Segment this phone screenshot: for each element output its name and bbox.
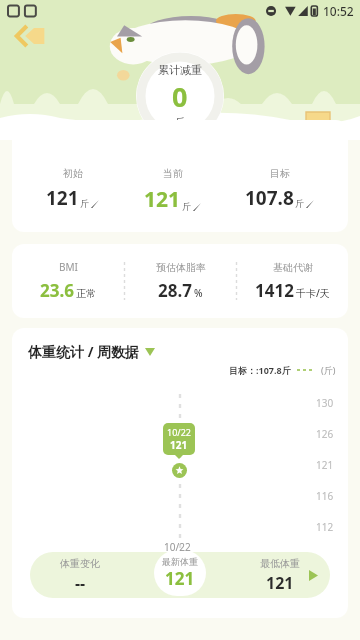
staticText: 23.6 [40,279,74,302]
button[interactable]: 基础代谢 [237,261,348,302]
staticText: 10/22 [167,426,191,438]
staticText: 130 [316,396,334,410]
staticText: 基础代谢 [273,261,313,274]
button[interactable]: Back [10,22,50,50]
staticText: 107.8 [245,185,294,211]
staticText: 体重变化 [60,557,100,570]
staticText: 初始 [63,167,83,180]
staticText: 116 [316,489,334,503]
staticText: 目标：:107.8斤 [229,364,291,376]
staticText: 121 [170,438,188,452]
staticText: 121 [165,567,195,590]
staticText: 126 [316,427,334,441]
staticText: 最新体重 [162,556,198,567]
button[interactable]: 当前 [134,165,211,216]
staticText: 斤 [80,198,89,209]
staticText: 10:52 [323,3,354,19]
staticText: 1412 [255,279,294,302]
staticText: 112 [316,520,334,534]
staticText: -- [75,572,86,594]
staticText: 累计减重 [158,63,202,77]
staticText: 28.7 [158,279,192,302]
staticText: 121 [266,572,294,594]
button[interactable]: 预估体脂率 [125,261,236,302]
staticText: 千卡/天 [296,286,330,300]
button[interactable]: Bookmark [306,112,330,146]
staticText: 预估体脂率 [156,261,206,274]
staticText: 最低体重 [260,557,300,570]
staticText: 斤 [175,115,186,129]
button[interactable]: 体重变化 [30,552,330,598]
button[interactable]: 体重统计 / 周数据 [28,342,155,361]
button[interactable]: BMI [12,260,124,302]
staticText: 121 [46,185,79,211]
staticText: 121 [144,185,181,214]
button[interactable]: 目标 [235,165,324,213]
staticText: 斤 [182,201,191,212]
staticText: BMI [59,260,78,274]
staticText: 目标 [270,167,290,180]
staticText: 当前 [163,167,183,180]
staticText: 斤 [295,198,304,209]
staticText: 10/22 [164,540,191,554]
button[interactable]: 初始 [36,165,109,213]
staticText: 121 [316,458,334,472]
staticText: 0 [172,78,188,115]
staticText: (斤) [321,364,336,376]
staticText: % [194,286,203,300]
staticText: 正常 [76,287,96,300]
staticText: 体重统计 / 周数据 [28,342,140,361]
